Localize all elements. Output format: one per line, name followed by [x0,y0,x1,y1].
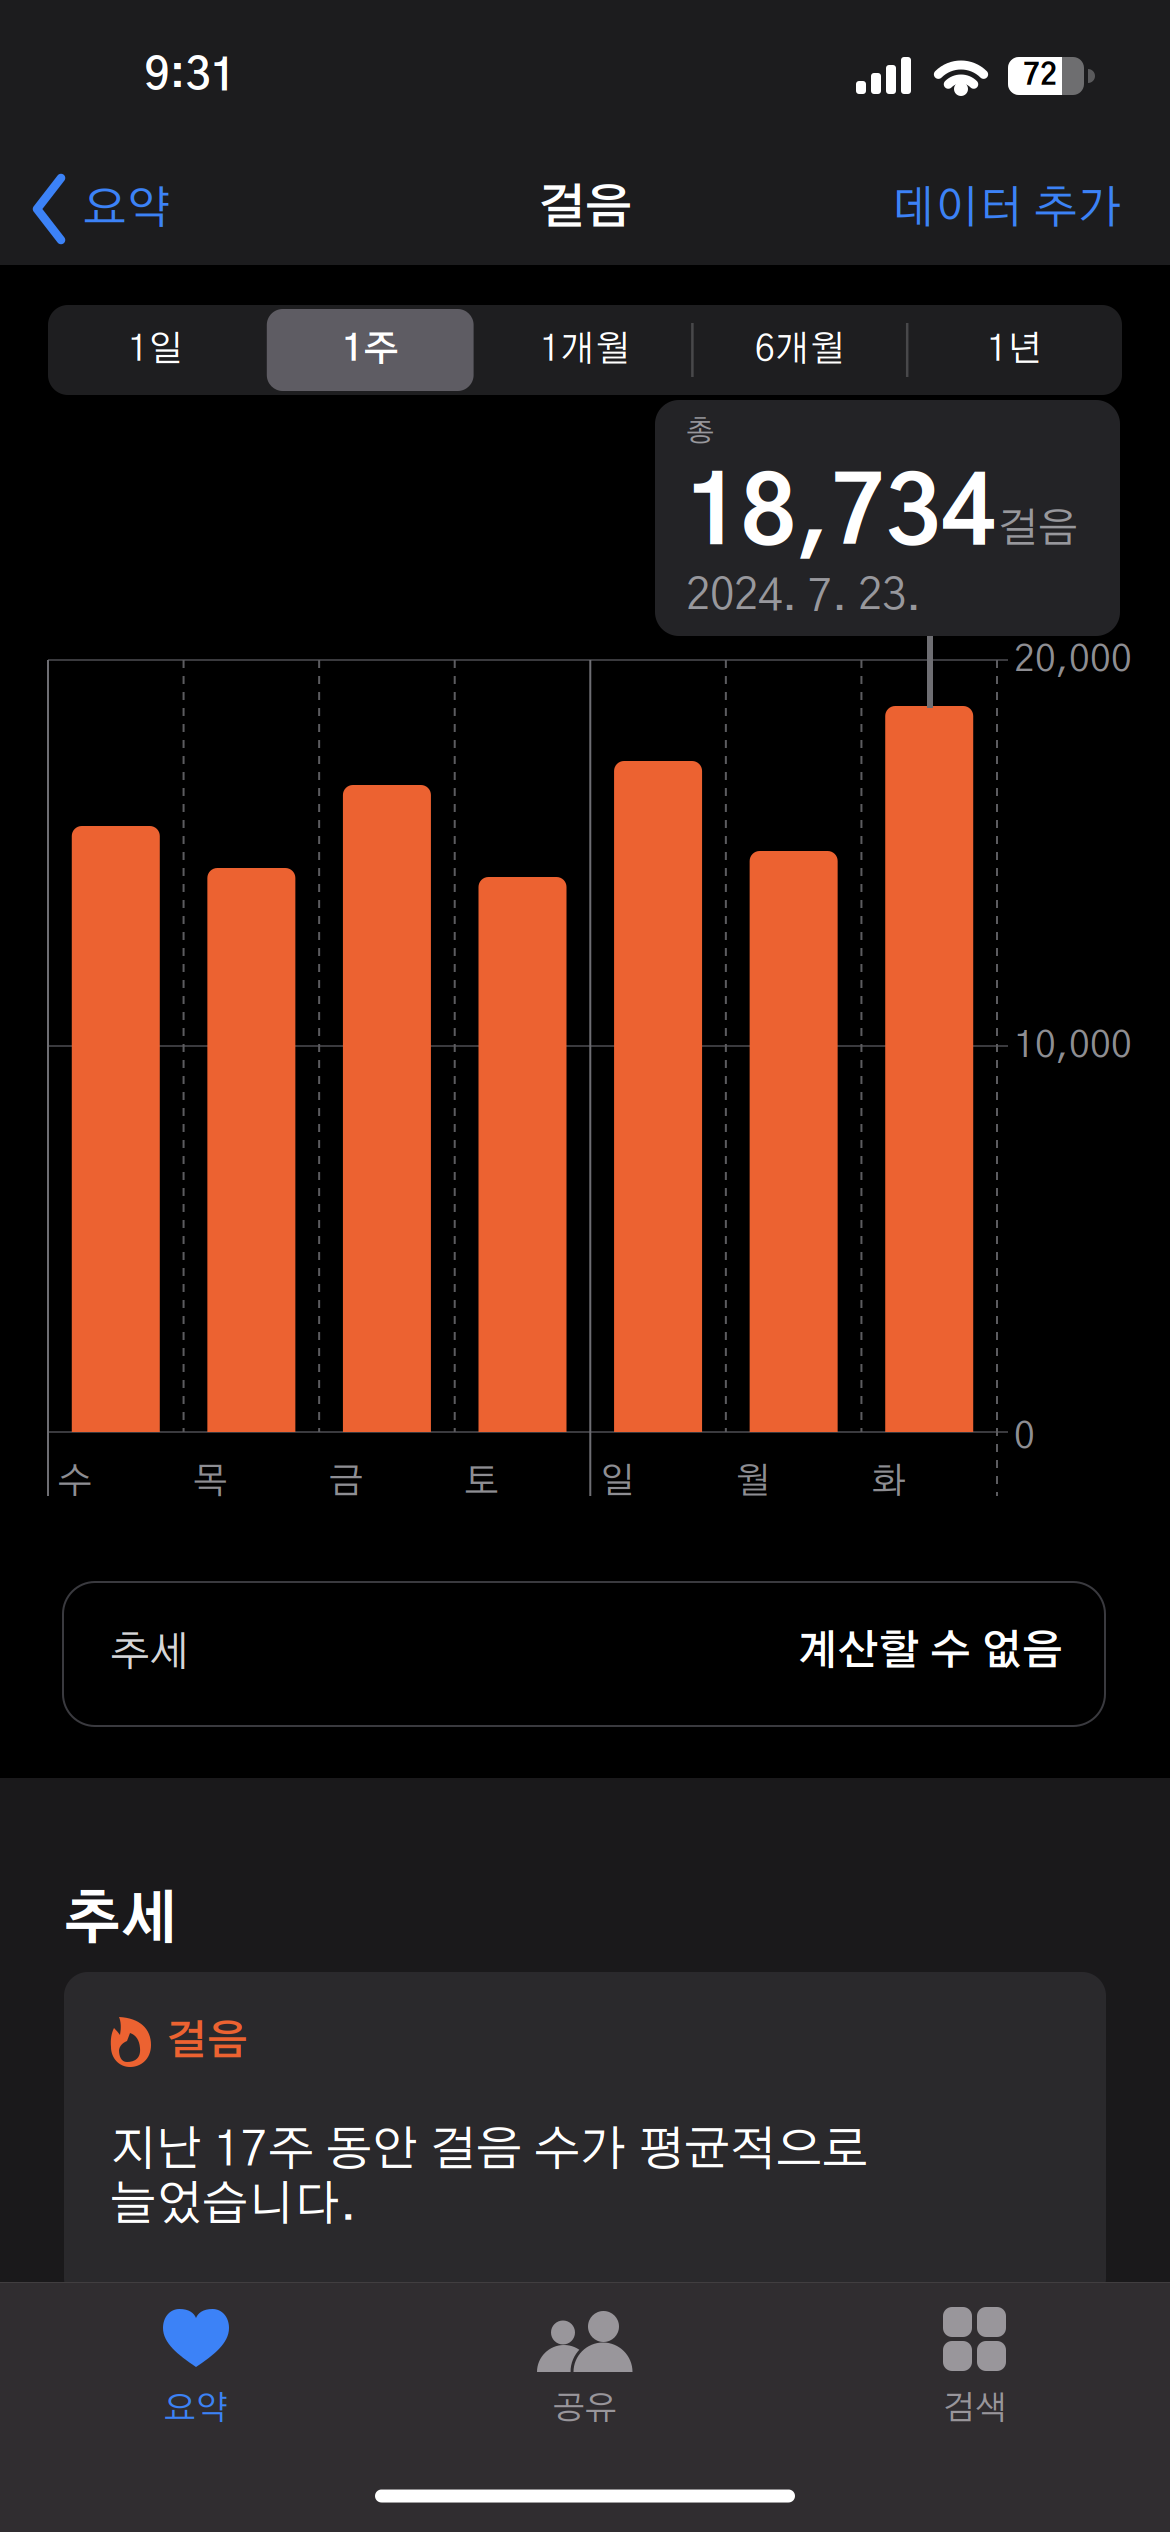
staticText: 20,000 [1014,642,1132,678]
staticText: 추세 [110,1633,190,1673]
staticText: 10,000 [1014,1028,1132,1064]
button[interactable]: 6개월 [692,305,907,395]
staticText: 걸음 [166,2022,248,2062]
button[interactable]: 요약 [35,179,171,239]
staticText: 추세 [64,1893,178,1949]
staticText: 걸음 [998,509,1078,549]
staticText: 계산할 수 없음 [797,1632,1063,1672]
staticText: 1년 [987,332,1042,367]
staticText: 1일 [128,332,183,367]
button[interactable]: 1일 [48,305,263,395]
staticText: 금 [329,1464,364,1499]
staticText: 72 [1023,62,1057,90]
button[interactable]: 공유 [465,2282,705,2446]
button[interactable]: 검색 [855,2282,1095,2446]
button[interactable]: 1개월 [478,305,692,395]
staticText: 지난 17주 동안 걸음 수가 평균적으로 늘었습니다. [110,2127,868,2229]
staticText: 토 [464,1464,499,1499]
staticText: 일 [600,1464,635,1499]
staticText: 수 [57,1464,92,1499]
staticText: 2024. 7. 23. [686,575,921,618]
staticText: 요약 [164,2393,228,2425]
staticText: 0 [1014,1419,1035,1455]
button[interactable]: 데이터 추가 [722,187,1122,231]
staticText: 공유 [553,2393,617,2425]
staticText: 9:31 [144,55,235,98]
staticText: 걸음 [538,186,632,232]
staticText: 월 [735,1464,770,1499]
button[interactable]: 요약 [76,2282,316,2446]
staticText: 화 [871,1464,906,1499]
button[interactable]: 1년 [907,305,1122,395]
staticText: 목 [193,1464,228,1499]
staticText: 1개월 [540,332,630,367]
staticText: 1주 [342,332,398,367]
staticText: 6개월 [755,332,845,367]
staticText: 요약 [83,187,171,231]
staticText: 총 [686,418,714,446]
button[interactable]: 1주 [263,305,478,395]
staticText: 검색 [943,2393,1007,2425]
staticText: 데이터 추가 [891,187,1122,231]
button[interactable]: 걸음 [64,1972,1106,2302]
staticText: 18,734 [686,470,996,561]
